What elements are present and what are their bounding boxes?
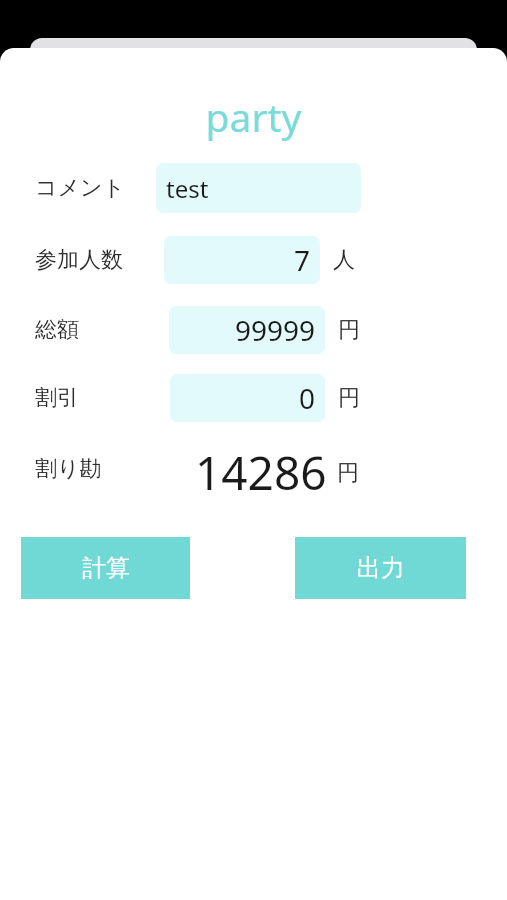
staticText: 円: [338, 384, 360, 412]
staticText: 0: [298, 379, 315, 417]
staticText: コメント: [35, 174, 156, 202]
button[interactable]: 99999: [169, 306, 325, 354]
staticText: party: [0, 90, 507, 143]
staticText: 14286: [195, 441, 327, 497]
staticText: 計算: [82, 553, 130, 583]
button[interactable]: 0: [170, 374, 325, 422]
button[interactable]: 7: [164, 236, 320, 284]
staticText: 7: [293, 241, 310, 279]
staticText: 参加人数: [35, 246, 164, 274]
button[interactable]: 出力: [295, 537, 466, 599]
staticText: 出力: [357, 553, 405, 583]
staticText: 割り勘: [35, 455, 165, 483]
staticText: 総額: [35, 316, 169, 344]
staticText: test: [166, 172, 209, 205]
staticText: 99999: [234, 311, 315, 349]
staticText: 割引: [35, 384, 170, 412]
staticText: 円: [338, 316, 360, 344]
button[interactable]: 計算: [21, 537, 190, 599]
staticText: 人: [333, 246, 355, 274]
staticText: 円: [337, 459, 359, 487]
button[interactable]: test: [156, 163, 361, 213]
